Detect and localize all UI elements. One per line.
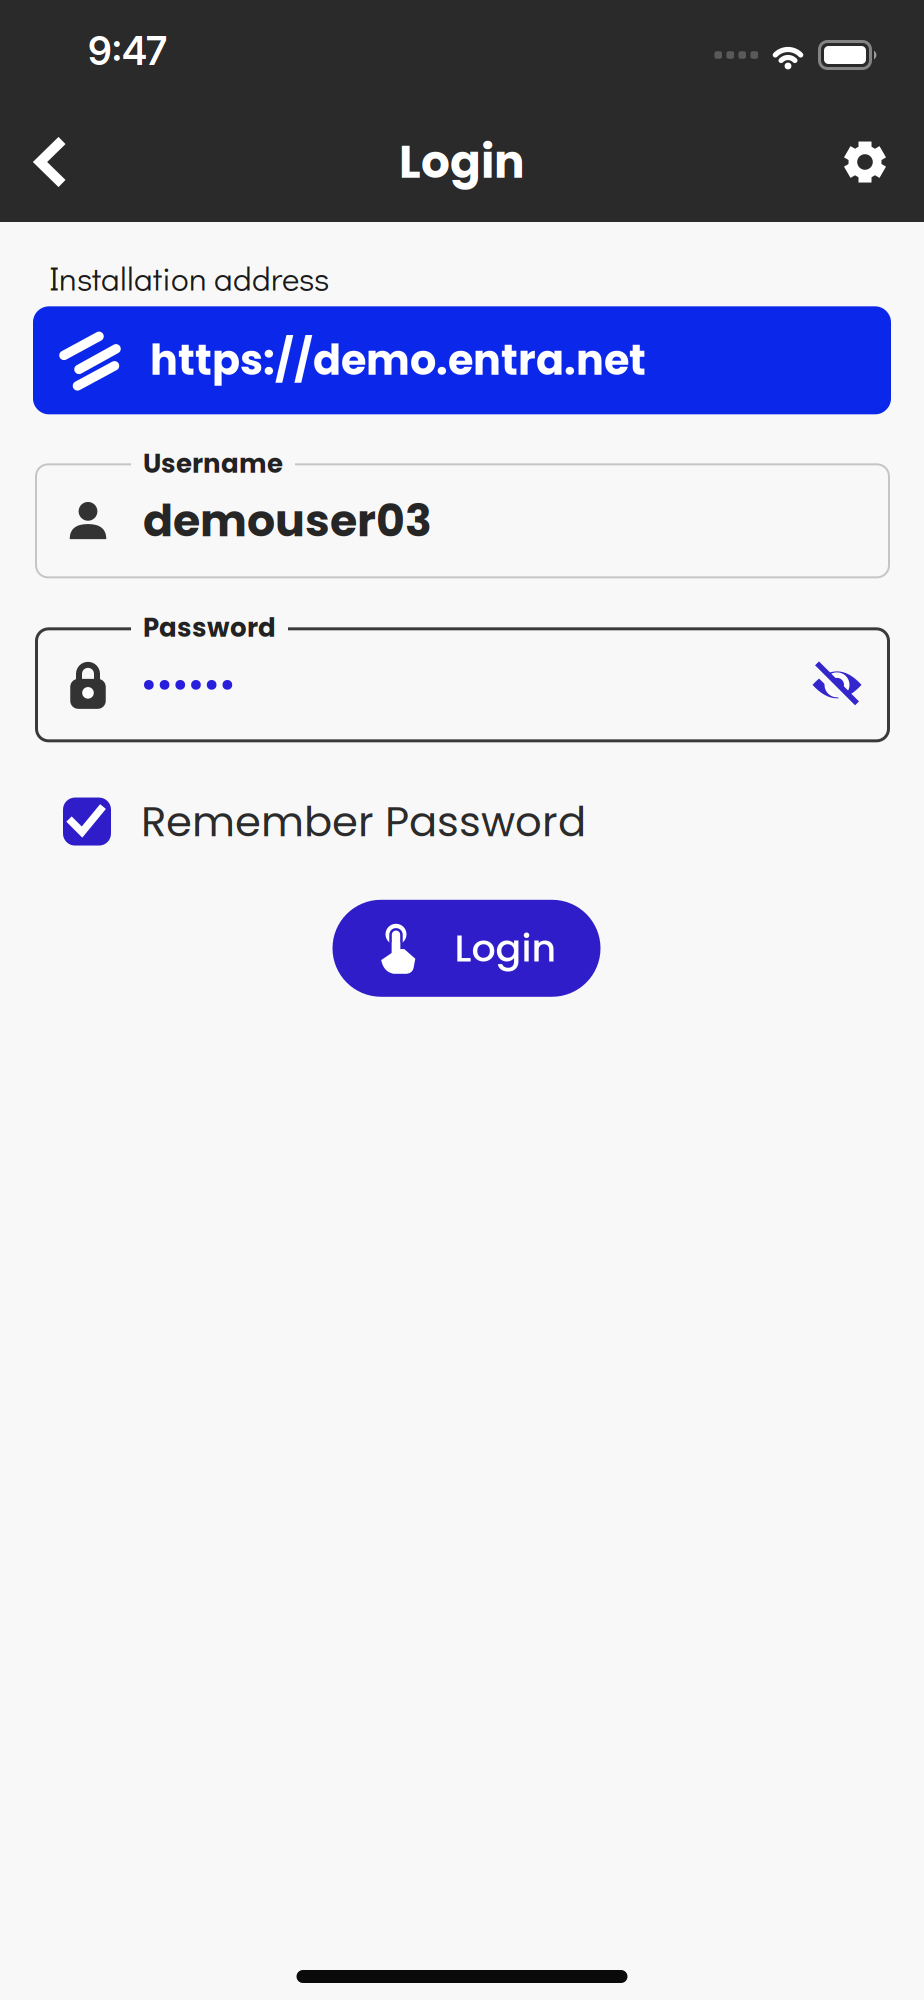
staticText: Login	[454, 922, 556, 975]
button[interactable]: demouser03	[35, 463, 890, 578]
staticText: Password	[143, 609, 276, 646]
staticText: Installation address	[49, 256, 329, 299]
button[interactable]: Login	[332, 900, 600, 997]
staticText: demouser03	[143, 490, 432, 552]
button[interactable]: Show password	[811, 659, 890, 711]
button[interactable]: Back	[0, 118, 86, 206]
button[interactable]: https://demo.entra.net	[33, 306, 891, 414]
button[interactable]: Password	[35, 627, 890, 742]
staticText: 9:47	[88, 28, 167, 74]
staticText: Username	[143, 445, 283, 482]
staticText: Remember Password	[141, 792, 586, 851]
staticText: https://demo.entra.net	[150, 331, 646, 389]
staticText: Login	[399, 130, 525, 194]
button[interactable]: Settings	[820, 117, 924, 207]
button[interactable]: Remember Password	[63, 792, 586, 851]
